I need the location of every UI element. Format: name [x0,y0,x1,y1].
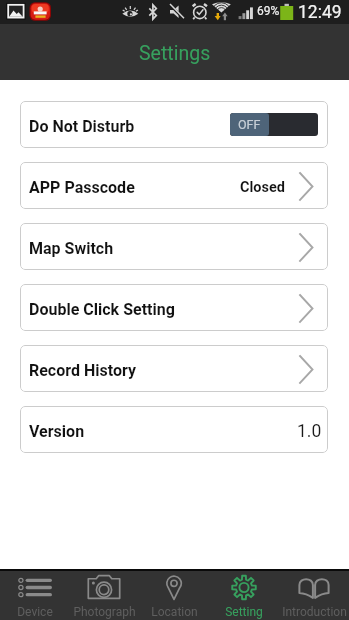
staticText: Closed [240,179,286,196]
button[interactable]: Do Not Disturb toggle, off [230,113,318,136]
staticText: Setting [225,605,263,619]
button[interactable]: Version [20,406,328,453]
staticText: Location [151,605,198,619]
button[interactable]: Setting [209,571,279,620]
staticText: Do Not Disturb [29,117,135,136]
staticText: Settings [139,42,211,65]
staticText: Device [17,605,53,619]
button[interactable]: Record History [20,345,328,392]
staticText: Version [29,422,85,441]
button[interactable]: Photograph [69,571,139,620]
staticText: Record History [29,361,136,380]
staticText: 69% [257,4,280,18]
staticText: Map Switch [29,239,114,258]
button[interactable]: Double Click Setting [20,284,328,331]
staticText: OFF [238,117,261,132]
staticText: Double Click Setting [29,300,175,319]
button[interactable]: Do Not Disturb [20,101,328,148]
button[interactable]: Location [139,571,209,620]
staticText: Photograph [73,605,136,619]
staticText: APP Passcode [29,178,135,197]
staticText: Introduction [282,605,347,619]
button[interactable]: Device [0,571,69,620]
staticText: 1.0 [297,421,322,442]
button[interactable]: Introduction [279,571,349,620]
button[interactable]: Map Switch [20,223,328,270]
button[interactable]: APP Passcode [20,162,328,209]
staticText: 12:49 [298,2,342,23]
